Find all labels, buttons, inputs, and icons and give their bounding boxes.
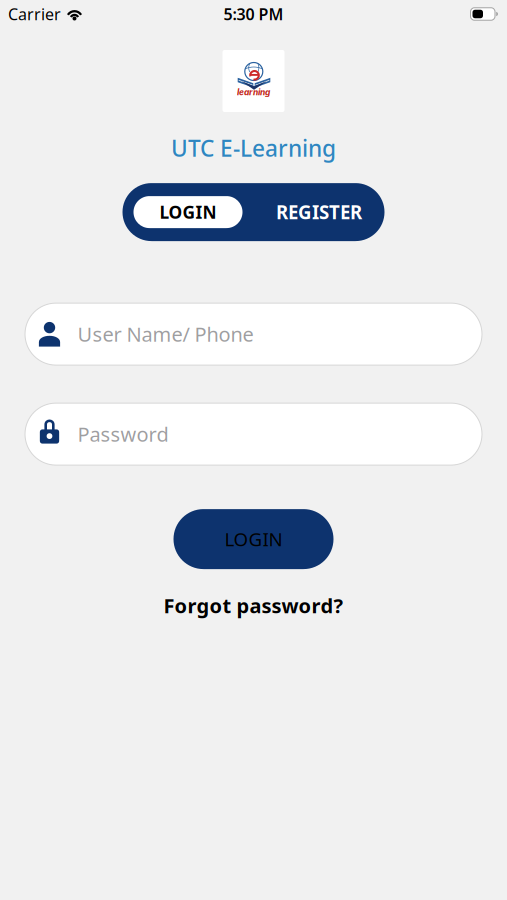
staticText: learning [237, 87, 270, 97]
button[interactable]: Password [25, 403, 482, 465]
staticText: Carrier [8, 3, 61, 25]
staticText: LOGIN [159, 201, 216, 224]
staticText: Password [77, 421, 168, 447]
staticText: 5:30 PM [223, 3, 283, 25]
staticText: User Name/ Phone [77, 321, 253, 347]
button[interactable]: Forgot password? [163, 592, 343, 619]
button[interactable]: REGISTER [253, 183, 384, 241]
staticText: LOGIN [224, 527, 282, 551]
button[interactable]: LOGIN [122, 183, 253, 241]
button[interactable]: User Name/ Phone [25, 303, 482, 365]
button[interactable]: LOGIN [173, 509, 333, 569]
staticText: REGISTER [276, 200, 362, 224]
staticText: Forgot password? [163, 592, 343, 619]
staticText: UTC E-Learning [171, 133, 336, 163]
